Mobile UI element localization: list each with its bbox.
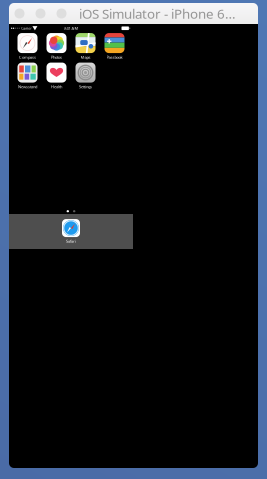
button[interactable]: Settings	[71, 62, 100, 89]
staticText: Maps	[80, 54, 90, 60]
staticText: Compass	[19, 54, 36, 60]
staticText: Settings	[79, 84, 92, 89]
button[interactable]: Health	[42, 62, 71, 89]
staticText: Health	[51, 84, 62, 89]
staticText: Carrier	[21, 26, 31, 31]
staticText: iOS Simulator - iPhone 6…	[79, 5, 236, 22]
button[interactable]: Photos	[42, 33, 71, 60]
button[interactable]: Compass	[13, 33, 42, 60]
button[interactable]: Minimise	[35, 8, 45, 18]
button[interactable]: Newsstand	[13, 62, 42, 89]
button[interactable]: Passbook	[100, 33, 129, 60]
button[interactable]: Maps	[71, 33, 100, 60]
staticText: Newsstand	[18, 84, 37, 89]
button[interactable]: Zoom	[56, 8, 66, 18]
button[interactable]: Close	[14, 8, 24, 18]
staticText: Passbook	[106, 54, 122, 60]
staticText: Safari	[66, 238, 76, 244]
button[interactable]: Safari	[56, 219, 85, 244]
staticText: 9:41 AM	[63, 25, 78, 31]
staticText: Photos	[51, 54, 62, 60]
